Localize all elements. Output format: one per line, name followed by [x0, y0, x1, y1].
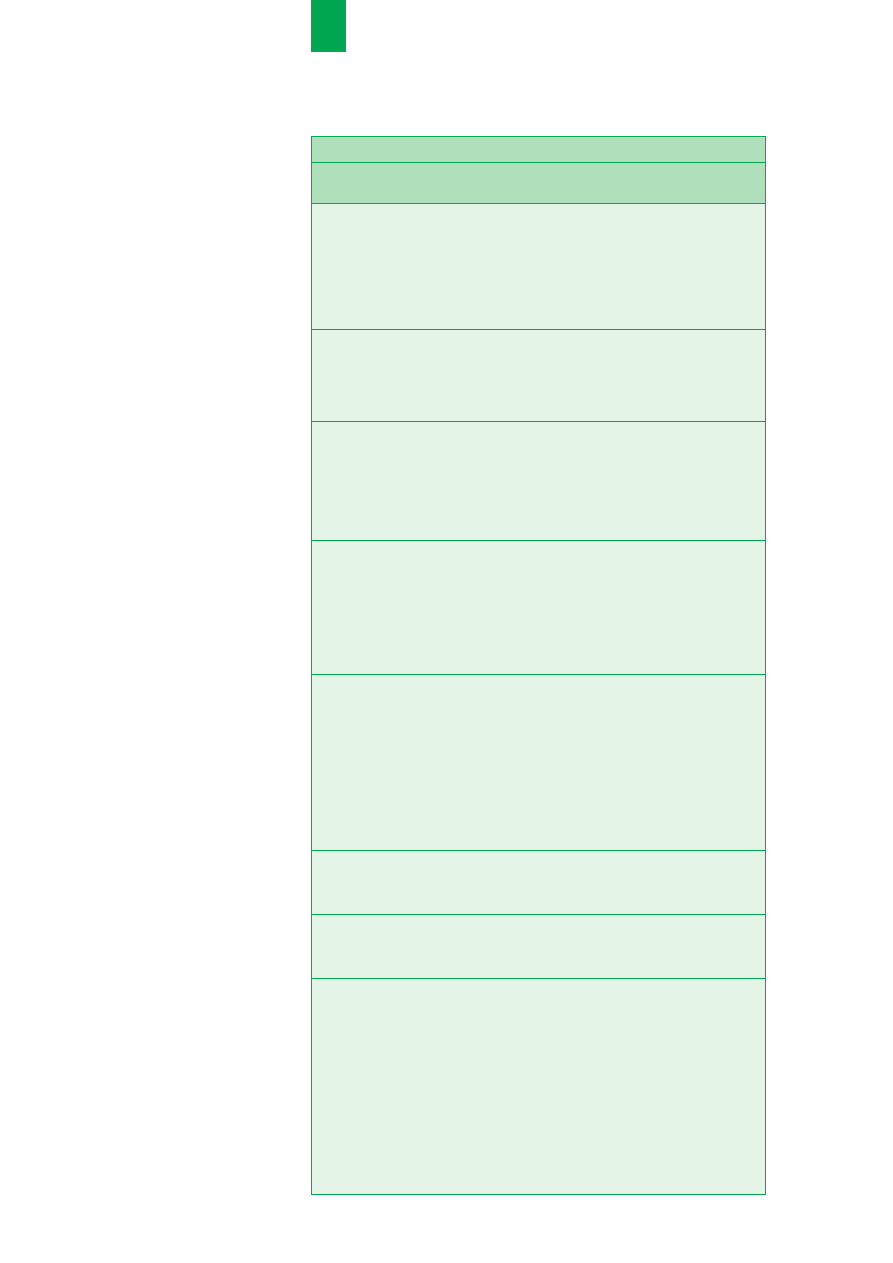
button[interactable]: Table row 2 [311, 330, 766, 422]
button[interactable]: Table row 1 [311, 204, 766, 330]
button[interactable]: Table header row 1 [311, 137, 766, 163]
button[interactable]: Table header row 2 [311, 163, 766, 204]
button[interactable]: Table row 6 [311, 851, 766, 915]
button[interactable]: Table row 5 [311, 675, 766, 851]
button[interactable]: Table row 8 [311, 979, 766, 1195]
button[interactable]: Table row 4 [311, 541, 766, 675]
button[interactable]: Table row 7 [311, 915, 766, 979]
button[interactable]: Table row 3 [311, 422, 766, 541]
